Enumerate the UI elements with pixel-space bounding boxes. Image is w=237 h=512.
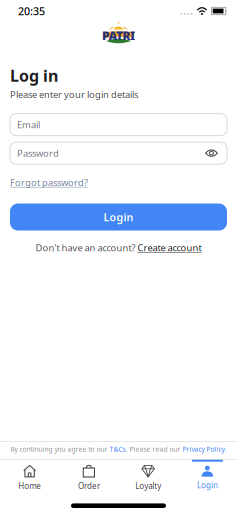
staticText: Log in xyxy=(10,65,58,86)
staticText: PATRI xyxy=(102,28,135,44)
staticText: Forgot password? xyxy=(10,176,88,188)
button[interactable]: Create account xyxy=(137,241,201,254)
staticText: Password xyxy=(17,147,59,159)
staticText: . Please read our xyxy=(125,445,182,454)
staticText: Home xyxy=(18,481,41,491)
button[interactable]: Login xyxy=(10,203,227,230)
staticText: Privacy Policy xyxy=(182,445,224,454)
staticText: By continuing you agree to our xyxy=(10,445,109,454)
button[interactable]: Show password xyxy=(205,149,227,157)
staticText: Email xyxy=(17,118,40,131)
staticText: Login xyxy=(197,480,218,490)
button[interactable]: Loyalty xyxy=(118,465,178,491)
staticText: Don't have an account? xyxy=(35,241,137,254)
staticText: Create account xyxy=(137,241,201,254)
staticText: 20:35 xyxy=(18,4,45,18)
button[interactable]: Home xyxy=(0,465,59,491)
staticText: T&Cs xyxy=(109,445,125,454)
button[interactable]: Privacy Policy xyxy=(182,445,224,454)
button[interactable]: Login xyxy=(178,465,237,490)
staticText: Login xyxy=(103,210,133,224)
button[interactable]: Order xyxy=(59,465,118,491)
staticText: . xyxy=(224,445,226,454)
button[interactable]: T&Cs xyxy=(109,445,125,454)
staticText: Please enter your login details xyxy=(10,88,138,101)
staticText: Loyalty xyxy=(135,481,161,491)
button[interactable]: Forgot password? xyxy=(10,176,88,188)
staticText: Order xyxy=(78,481,100,491)
